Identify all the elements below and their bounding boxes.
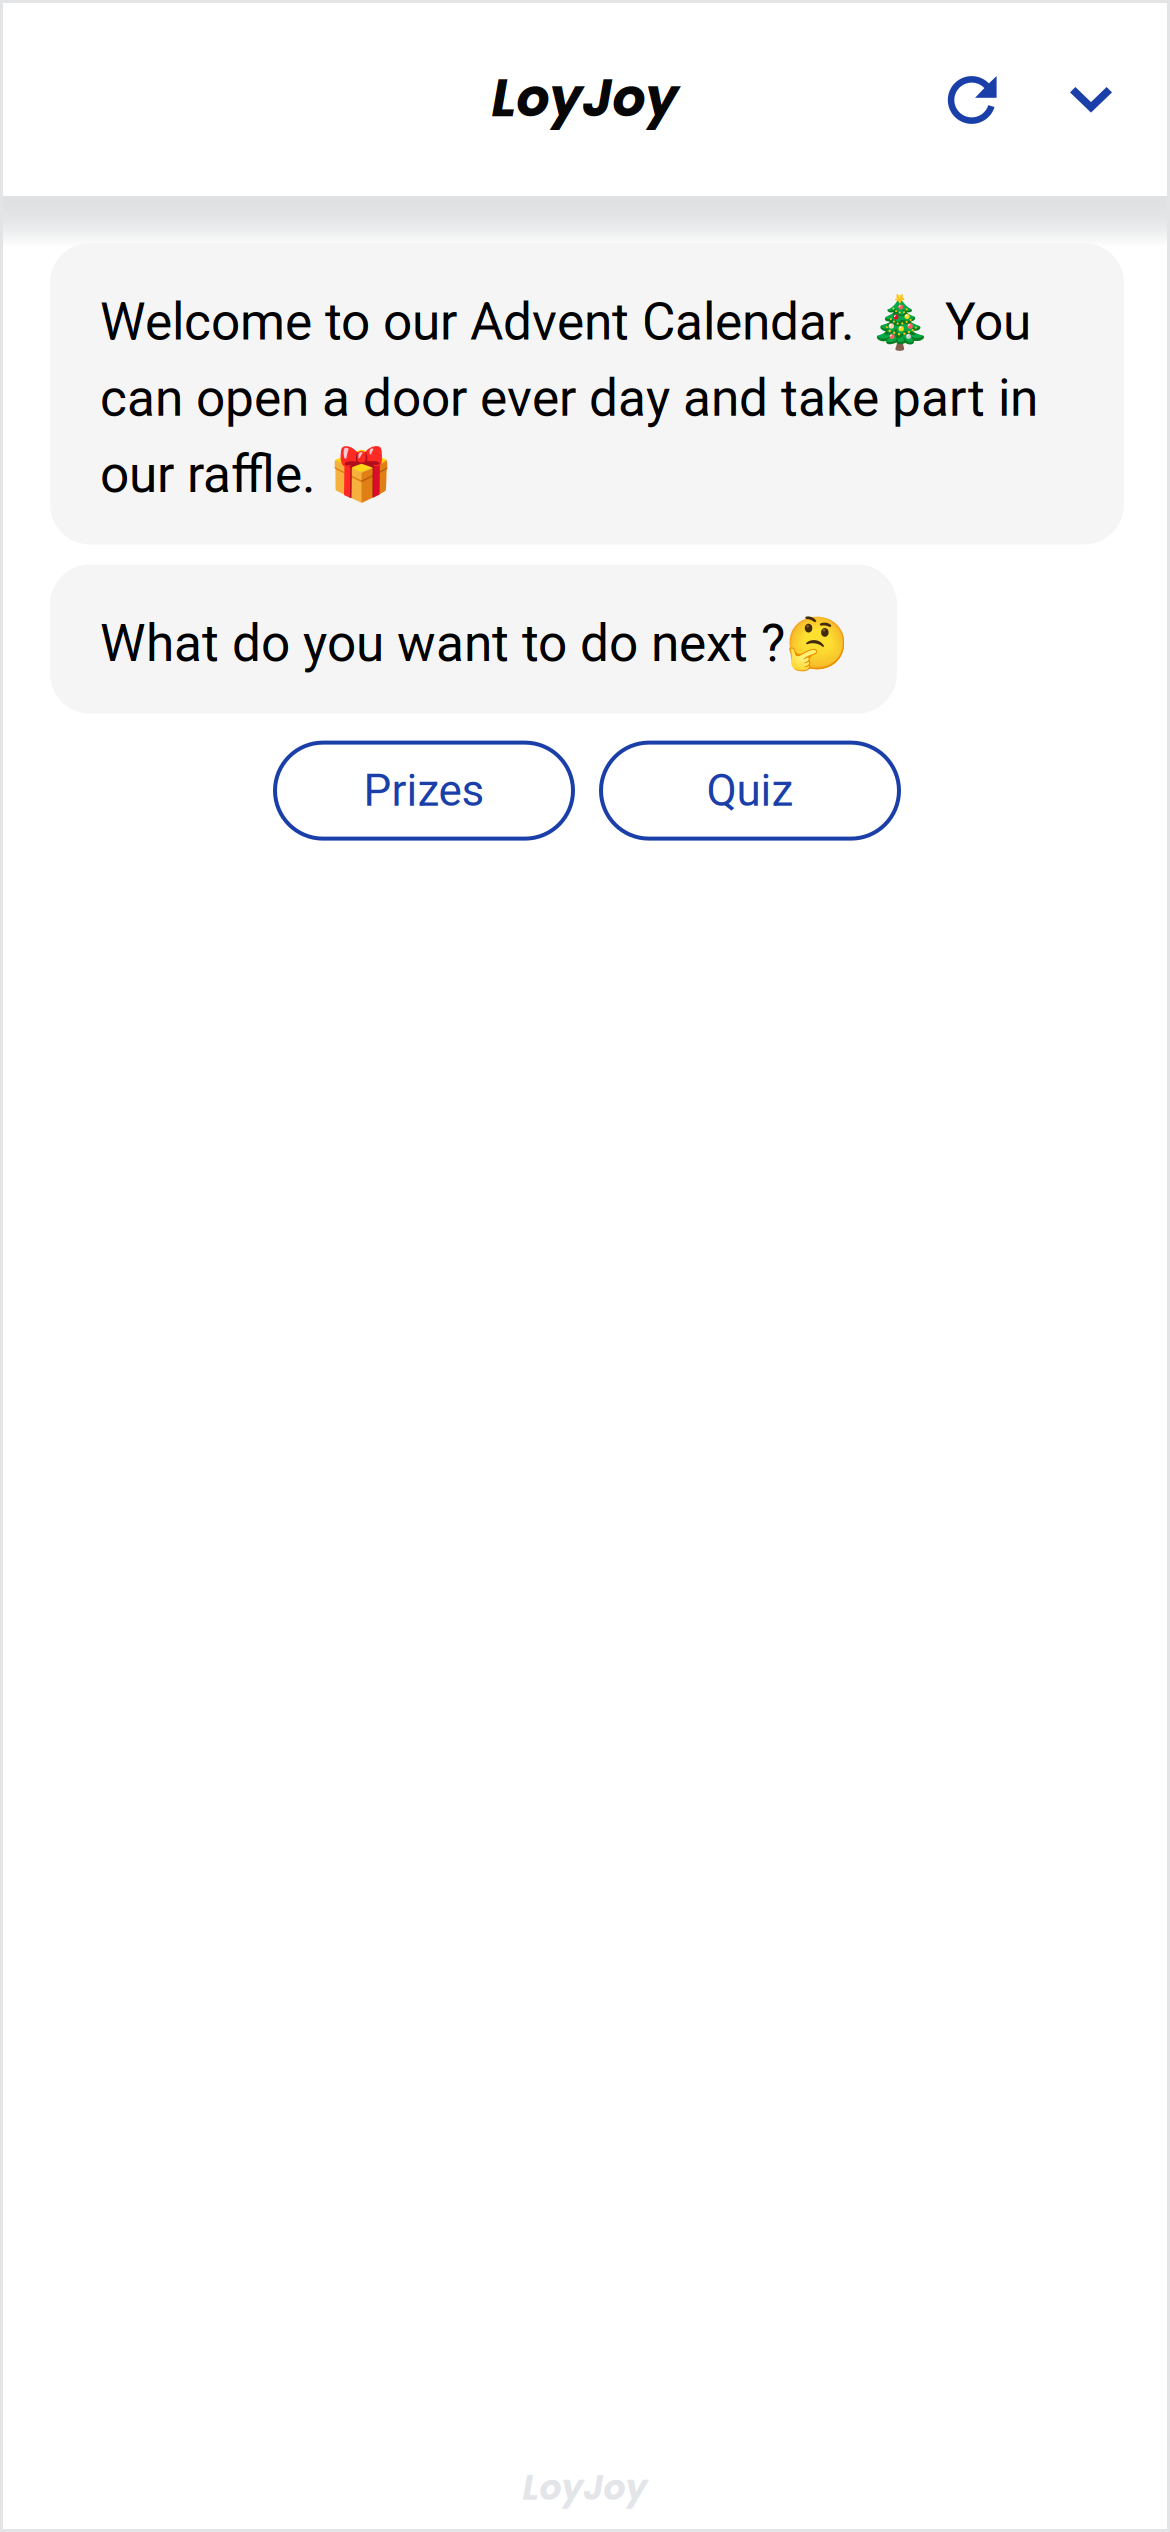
staticText: Welcome to our Advent Calendar. 🎄 You ca… [100, 292, 1038, 504]
button[interactable]: Reload [948, 72, 997, 124]
staticText: LoyJoy [491, 62, 678, 134]
staticText: Prizes [363, 765, 484, 816]
button[interactable]: Prizes [275, 743, 573, 839]
staticText: LoyJoy [522, 2463, 647, 2512]
staticText: What do you want to do next ?🤔 [100, 613, 849, 674]
button[interactable]: Quiz [601, 743, 899, 839]
button[interactable]: Collapse chat [1070, 83, 1112, 113]
staticText: Quiz [706, 765, 793, 816]
